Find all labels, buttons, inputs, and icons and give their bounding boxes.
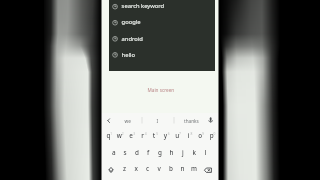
button[interactable]: we (112, 114, 144, 126)
button[interactable]: k (189, 145, 200, 161)
button[interactable]: a (108, 145, 119, 161)
button[interactable]: y (160, 129, 171, 145)
button[interactable]: google (109, 15, 215, 31)
button[interactable]: android (109, 31, 215, 47)
button[interactable]: z (119, 161, 130, 177)
button[interactable]: p (206, 129, 217, 145)
button[interactable]: thanks (176, 114, 206, 126)
button[interactable]: I (144, 114, 174, 126)
button[interactable]: e (126, 129, 137, 145)
button[interactable]: Voice input (206, 114, 215, 126)
button[interactable]: i (183, 129, 194, 145)
button[interactable]: g (154, 145, 165, 161)
button[interactable]: l (200, 145, 211, 161)
button[interactable]: n (177, 161, 188, 177)
button[interactable]: s (120, 145, 131, 161)
button[interactable]: hello (109, 47, 215, 63)
button[interactable]: h (166, 145, 177, 161)
button[interactable]: c (142, 161, 153, 177)
button[interactable]: t (149, 129, 160, 145)
button[interactable]: v (154, 161, 165, 177)
button[interactable]: r (137, 129, 148, 145)
button[interactable]: d (131, 145, 142, 161)
button[interactable]: w (114, 129, 125, 145)
button[interactable]: o (194, 129, 205, 145)
button[interactable]: f (143, 145, 154, 161)
button[interactable]: Main screen (102, 80, 219, 100)
button[interactable]: j (177, 145, 188, 161)
button[interactable]: x (131, 161, 142, 177)
button[interactable]: More suggestions (103, 114, 112, 126)
button[interactable]: u (171, 129, 182, 145)
button[interactable]: m (188, 161, 199, 177)
button[interactable]: b (165, 161, 176, 177)
button[interactable]: search keyword (109, 0, 215, 15)
button[interactable]: Shift (103, 161, 119, 177)
button[interactable]: q (103, 129, 114, 145)
button[interactable]: Backspace (200, 161, 216, 177)
